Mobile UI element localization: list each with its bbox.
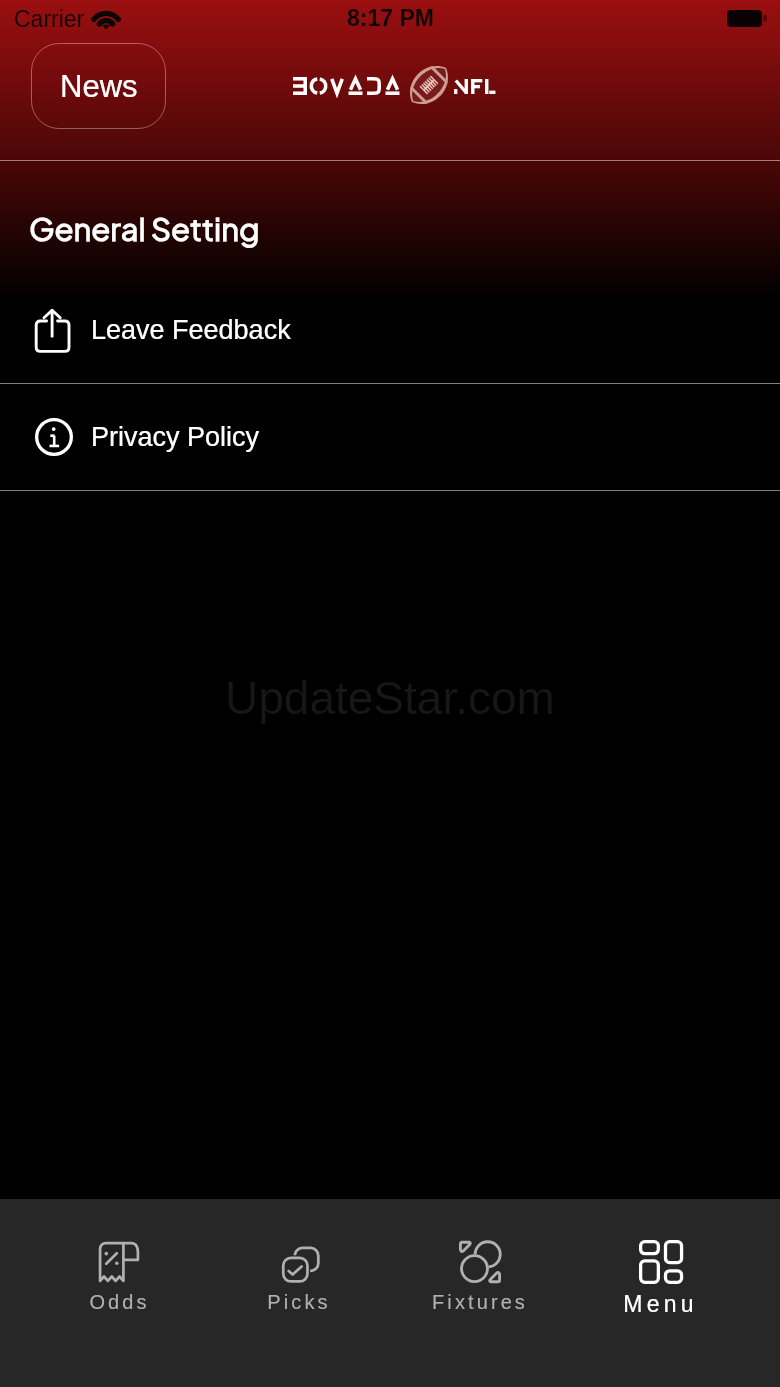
other: Fixtures (458, 1240, 502, 1284)
staticText: Odds (89, 1291, 150, 1313)
staticText: Picks (267, 1291, 331, 1313)
button[interactable]: Fixtures (389, 1199, 570, 1313)
other: Odds (97, 1240, 141, 1284)
button[interactable]: Privacy information (0, 384, 780, 490)
staticText: Carrier (14, 6, 85, 32)
other: Privacy information (35, 418, 73, 456)
other: Picks (277, 1240, 321, 1284)
button[interactable]: Picks (209, 1199, 389, 1313)
button[interactable]: Odds (29, 1199, 209, 1313)
staticText: Leave Feedback (91, 315, 291, 345)
other: Share (35, 309, 70, 352)
button[interactable]: Share (0, 277, 780, 383)
staticText: 8:17 PM (347, 5, 434, 31)
staticText: Privacy Policy (91, 422, 260, 452)
staticText: General Setting (29, 209, 260, 248)
button[interactable]: Menu (570, 1199, 751, 1317)
staticText: Fixtures (432, 1291, 528, 1313)
button[interactable]: News (31, 43, 166, 129)
staticText: Menu (623, 1291, 698, 1317)
other: Menu (639, 1240, 683, 1284)
staticText: News (60, 69, 138, 104)
staticText: UpdateStar.com (225, 672, 555, 723)
